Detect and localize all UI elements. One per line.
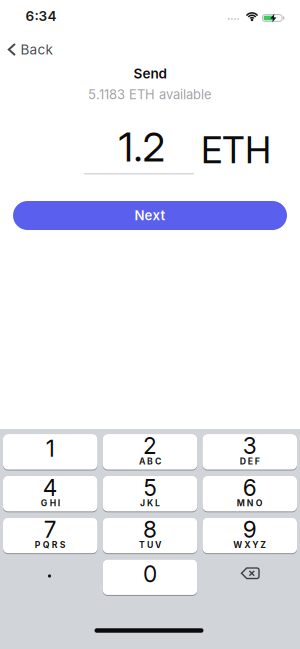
- button[interactable]: 3: [202, 434, 297, 471]
- staticText: 6: [243, 474, 257, 501]
- staticText: 8: [143, 516, 157, 543]
- button[interactable]: 5: [103, 476, 197, 512]
- staticText: 2: [143, 432, 157, 459]
- staticText: T U V: [139, 540, 161, 550]
- staticText: 1: [46, 435, 55, 462]
- staticText: 1.2: [118, 123, 165, 171]
- staticText: Next: [134, 207, 165, 223]
- staticText: G H I: [41, 498, 60, 508]
- staticText: 5: [143, 474, 156, 501]
- staticText: 9: [243, 516, 257, 543]
- staticText: 0: [143, 560, 157, 588]
- button[interactable]: 9: [202, 518, 297, 554]
- staticText: ETH: [201, 128, 271, 172]
- staticText: 4: [43, 474, 58, 501]
- button[interactable]: 6: [202, 476, 297, 512]
- staticText: W X Y Z: [233, 540, 266, 550]
- staticText: P Q R S: [35, 540, 66, 550]
- button[interactable]: 2: [103, 434, 197, 471]
- staticText: A B C: [139, 456, 161, 466]
- staticText: Send: [133, 65, 166, 82]
- button[interactable]: Back: [7, 41, 53, 58]
- staticText: M N O: [237, 498, 263, 508]
- staticText: 6:34: [25, 8, 56, 24]
- button[interactable]: 4: [3, 476, 97, 512]
- button[interactable]: Decimal point: [2, 558, 97, 594]
- staticText: 3: [243, 432, 257, 459]
- button[interactable]: Next: [13, 201, 287, 230]
- staticText: J K L: [140, 498, 160, 508]
- button[interactable]: 7: [3, 518, 97, 554]
- staticText: Back: [21, 41, 53, 58]
- staticText: 5.1183 ETH available: [88, 87, 212, 102]
- button[interactable]: 0: [103, 559, 197, 596]
- staticText: 7: [44, 516, 57, 543]
- button[interactable]: Delete: [203, 555, 298, 592]
- button[interactable]: 1: [3, 434, 97, 471]
- button[interactable]: 8: [103, 518, 197, 554]
- staticText: D E F: [240, 456, 260, 466]
